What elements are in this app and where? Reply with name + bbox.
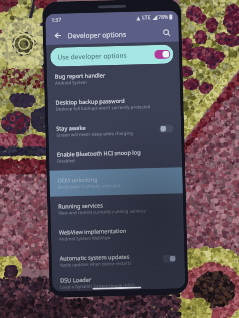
staticText: Disabled xyxy=(57,157,75,164)
staticText: Use developer options xyxy=(57,51,127,62)
button[interactable]: Enable Bluetooth HCI snoop log xyxy=(49,141,182,171)
staticText: Automatic system updates xyxy=(59,253,130,263)
staticText: OEM unlocking xyxy=(57,176,98,185)
button[interactable]: Use developer options xyxy=(50,45,174,67)
button[interactable]: Automatic system updates xyxy=(51,245,185,275)
staticText: Desktop full backups aren't currently pr… xyxy=(56,103,151,112)
staticText: Apply updates when device restarts xyxy=(60,260,132,268)
button[interactable]: Running services xyxy=(50,193,184,223)
staticText: Enable Bluetooth HCI snoop log xyxy=(57,148,141,159)
staticText: 1:37 xyxy=(51,16,61,24)
button[interactable]: Back xyxy=(51,28,65,43)
button[interactable]: Bug report handler xyxy=(47,63,180,93)
staticText: WebView implementation xyxy=(59,227,127,237)
staticText: Developer options xyxy=(68,30,127,40)
button[interactable]: OEM unlocking xyxy=(49,167,183,197)
staticText: Bug report handler xyxy=(55,71,106,81)
staticText: 78% xyxy=(158,14,168,21)
staticText: Running services xyxy=(58,201,103,211)
staticText: View and control currently running servi… xyxy=(58,207,146,216)
staticText: LTE xyxy=(142,14,151,21)
button[interactable]: Stay awake xyxy=(48,115,181,145)
staticText: Bootloader is already unlocked xyxy=(58,182,121,190)
staticText: Screen will never sleep while charging xyxy=(56,130,133,138)
staticText: DSU Loader xyxy=(60,276,92,285)
staticText: Desktop backup password xyxy=(55,97,126,107)
button[interactable]: Desktop backup password xyxy=(47,89,181,119)
button[interactable]: DSU Loader xyxy=(52,271,185,292)
staticText: Android System WebView xyxy=(59,234,111,242)
staticText: Load a Dynamic System Image (DSU) xyxy=(60,282,135,290)
button[interactable]: Search xyxy=(159,25,174,40)
button[interactable]: WebView implementation xyxy=(51,219,184,249)
staticText: Stay awake xyxy=(56,124,86,133)
staticText: Android System xyxy=(55,79,87,86)
